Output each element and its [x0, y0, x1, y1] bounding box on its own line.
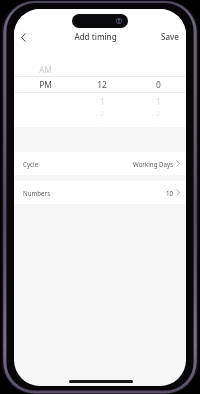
button[interactable]: 1 — [78, 94, 126, 108]
staticText: 1 — [100, 96, 105, 107]
staticText: Add timing — [74, 31, 117, 42]
button[interactable]: AM — [21, 62, 69, 76]
button[interactable]: 12 — [78, 77, 126, 91]
other: Front camera — [114, 16, 124, 26]
staticText: Numbers — [23, 189, 51, 197]
button[interactable]: Cycle — [14, 152, 186, 175]
staticText: 2 — [156, 109, 160, 117]
staticText: PM — [39, 79, 52, 90]
staticText: 2 — [100, 109, 104, 117]
button[interactable]: 0 — [134, 77, 182, 91]
staticText: 12 — [97, 79, 107, 90]
staticText: 1 — [156, 96, 161, 107]
button[interactable]: PM — [21, 77, 69, 91]
button[interactable]: Save — [154, 24, 186, 48]
staticText: Cycle — [23, 160, 39, 168]
staticText: 10 — [166, 189, 174, 197]
staticText: Working Days — [133, 160, 174, 168]
button[interactable]: Back — [15, 24, 32, 50]
staticText: 0 — [156, 79, 161, 90]
staticText: Save — [161, 31, 179, 42]
staticText: AM — [39, 64, 52, 75]
button[interactable]: Numbers — [14, 181, 186, 204]
button[interactable]: 1 — [134, 94, 182, 108]
